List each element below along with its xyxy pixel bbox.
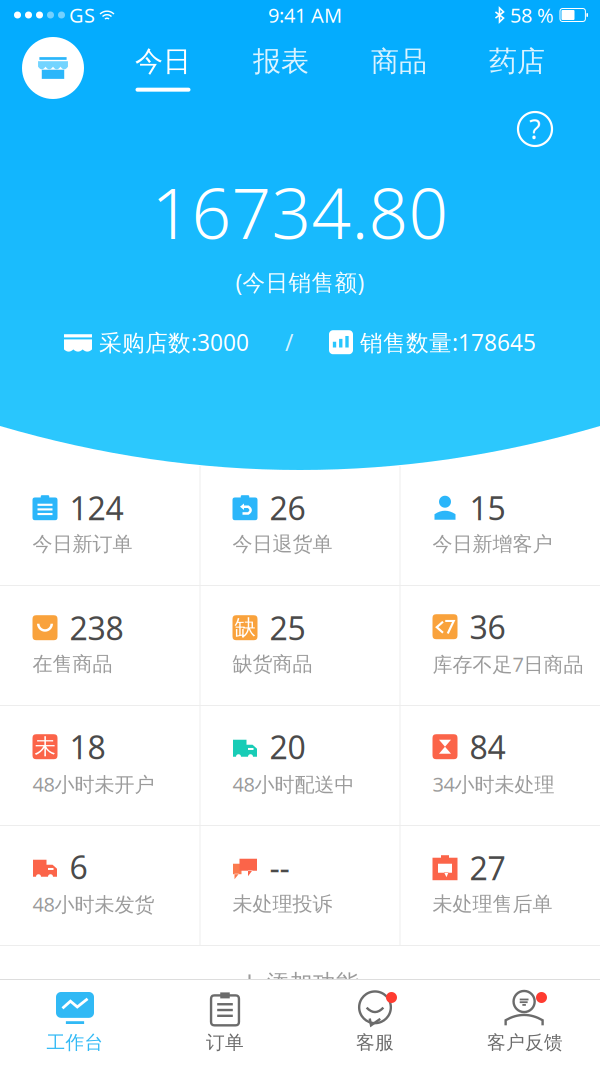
staticText: 订单 xyxy=(206,1031,244,1054)
staticText: 商品 xyxy=(371,44,427,79)
staticText: 添加功能 xyxy=(267,969,359,997)
staticText: 6 xyxy=(69,845,87,888)
button[interactable]: 缺 xyxy=(200,586,399,705)
staticText: 未处理投诉 xyxy=(232,892,332,916)
staticText: (今日销售额) xyxy=(235,267,364,297)
staticText: 采购店数:3000 xyxy=(92,327,249,357)
button[interactable]: 20 xyxy=(200,706,399,825)
staticText: 26 xyxy=(269,486,305,529)
button[interactable]: 未 xyxy=(0,706,199,825)
staticText: 48小时未发货 xyxy=(32,891,154,917)
button[interactable]: 订单 xyxy=(150,979,300,1067)
staticText: 库存不足7日商品 xyxy=(432,651,583,677)
staticText: 药店 xyxy=(489,44,545,79)
button[interactable]: 客服 xyxy=(300,979,450,1067)
button[interactable]: 今日 xyxy=(104,40,222,96)
staticText: 缺货商品 xyxy=(232,652,312,676)
staticText: 未处理售后单 xyxy=(432,892,552,916)
staticText: 今日 xyxy=(135,44,191,79)
staticText: 124 xyxy=(69,486,123,529)
button[interactable]: 27 xyxy=(400,826,599,945)
staticText: -- xyxy=(269,846,289,889)
staticText: 今日新订单 xyxy=(32,532,132,556)
button[interactable]: 36 xyxy=(400,586,599,705)
staticText: 客户反馈 xyxy=(487,1031,563,1054)
staticText: 9:41 AM xyxy=(268,2,342,28)
staticText: 销售数量:178645 xyxy=(353,327,536,357)
button[interactable]: 商品 xyxy=(340,40,458,96)
button[interactable]: 报表 xyxy=(222,40,340,96)
staticText: 未 xyxy=(34,734,55,760)
staticText: 18 xyxy=(69,725,105,768)
button[interactable]: 药店 xyxy=(458,40,576,96)
staticText: GS xyxy=(69,2,95,28)
staticText: 15 xyxy=(469,486,505,529)
button[interactable]: 238 xyxy=(0,586,199,705)
staticText: 48小时配送中 xyxy=(232,771,354,797)
staticText: 工作台 xyxy=(46,1031,103,1054)
button[interactable]: 84 xyxy=(400,706,599,825)
button[interactable]: Store xyxy=(22,37,84,99)
staticText: 58 % xyxy=(510,2,554,28)
staticText: / xyxy=(249,327,329,357)
button[interactable]: 6 xyxy=(0,826,199,945)
staticText: 客服 xyxy=(356,1031,394,1054)
staticText: 在售商品 xyxy=(32,652,112,676)
button[interactable]: 添加功能 xyxy=(0,946,600,1002)
button[interactable]: 工作台 xyxy=(0,979,150,1067)
staticText: 34小时未处理 xyxy=(432,771,554,797)
button[interactable]: -- xyxy=(200,826,399,945)
staticText: 今日退货单 xyxy=(232,532,332,556)
staticText: ? xyxy=(529,111,541,147)
staticText: 16734.80 xyxy=(151,166,448,258)
staticText: 48小时未开户 xyxy=(32,771,154,797)
button[interactable]: 15 xyxy=(400,466,599,585)
button[interactable]: 客户反馈 xyxy=(450,979,600,1067)
button[interactable]: 26 xyxy=(200,466,399,585)
staticText: 今日新增客户 xyxy=(432,532,552,556)
staticText: 缺 xyxy=(234,615,255,641)
button[interactable]: 124 xyxy=(0,466,199,585)
staticText: 25 xyxy=(269,606,305,649)
staticText: 36 xyxy=(469,605,505,648)
staticText: 27 xyxy=(469,846,505,889)
staticText: 84 xyxy=(469,725,505,768)
staticText: 20 xyxy=(269,725,305,768)
staticText: 报表 xyxy=(253,44,309,79)
button[interactable]: Help xyxy=(516,110,554,148)
staticText: 238 xyxy=(69,606,123,649)
